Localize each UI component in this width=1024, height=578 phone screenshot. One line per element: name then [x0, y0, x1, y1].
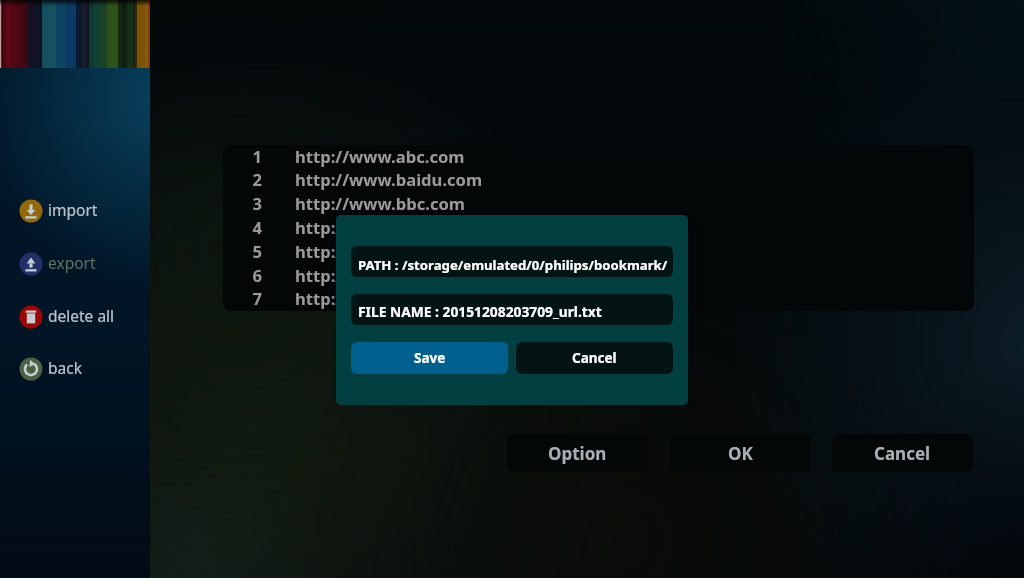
button[interactable]: Option	[507, 434, 648, 472]
staticText: Cancel	[572, 349, 617, 367]
staticText: http://www.bbc.com	[295, 192, 466, 215]
staticText: 2	[223, 168, 262, 191]
button[interactable]: back	[19, 352, 138, 386]
staticText: 1	[223, 145, 262, 168]
staticText: http://www.baidu.com	[295, 168, 483, 191]
staticText: http://www.abc.com	[295, 145, 465, 168]
staticText: http://www.msn.com	[295, 287, 471, 310]
button[interactable]: 6	[223, 263, 974, 287]
staticText: FILE NAME : 20151208203709_url.txt	[358, 302, 602, 321]
staticText: http://www.ebay.com	[295, 240, 475, 263]
button[interactable]: OK	[670, 434, 811, 472]
staticText: http://www.cnn.com	[295, 216, 466, 239]
staticText: delete all	[48, 305, 115, 326]
staticText: export	[48, 252, 96, 273]
button[interactable]: Cancel	[832, 434, 973, 472]
button[interactable]: export	[19, 247, 138, 281]
button[interactable]: 7	[223, 286, 974, 310]
staticText: 3	[223, 192, 262, 215]
staticText: Save	[414, 349, 446, 367]
button[interactable]: 3	[223, 191, 974, 215]
staticText: Cancel	[874, 442, 931, 465]
button[interactable]: 2	[223, 167, 974, 191]
staticText: import	[48, 199, 98, 220]
staticText: 7	[223, 287, 262, 310]
staticText: OK	[728, 442, 753, 465]
button[interactable]: 5	[223, 239, 974, 263]
button[interactable]: 4	[223, 215, 974, 239]
button[interactable]: Save	[351, 342, 508, 374]
staticText: 5	[223, 240, 262, 263]
button[interactable]: FILE NAME : 20151208203709_url.txt	[351, 294, 673, 325]
button[interactable]: import	[19, 194, 138, 228]
staticText: 6	[223, 264, 262, 287]
staticText: Option	[548, 442, 607, 465]
staticText: http://www.google.com	[295, 264, 493, 287]
staticText: back	[48, 357, 82, 378]
button[interactable]: delete all	[19, 300, 138, 334]
button[interactable]: PATH : /storage/emulated/0/philips/bookm…	[351, 246, 673, 277]
button[interactable]: Cancel	[516, 342, 673, 374]
staticText: PATH : /storage/emulated/0/philips/bookm…	[358, 256, 668, 274]
button[interactable]: 1	[223, 145, 974, 168]
staticText: 4	[223, 216, 262, 239]
